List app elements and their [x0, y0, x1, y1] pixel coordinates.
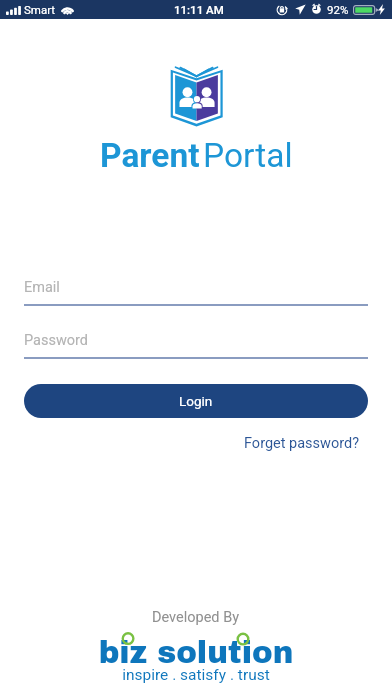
staticText: 11:11 AM	[174, 3, 224, 16]
staticText: Forget password?	[244, 435, 360, 452]
staticText: Developed By	[152, 609, 240, 626]
staticText: Smart	[24, 3, 56, 16]
staticText: Password	[24, 332, 89, 349]
staticText: biz solution	[91, 636, 301, 670]
button[interactable]: Login	[24, 384, 368, 418]
staticText: Email	[24, 279, 60, 296]
staticText: Parent	[100, 136, 200, 175]
staticText: Portal	[203, 136, 293, 175]
staticText: inspire . satisfy . trust	[91, 666, 301, 684]
button[interactable]: Forget password?	[244, 435, 360, 452]
staticText: 92%	[327, 3, 349, 16]
staticText: Login	[179, 393, 213, 409]
